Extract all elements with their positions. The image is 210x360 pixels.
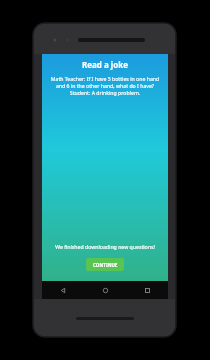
button[interactable]: CONTINUE bbox=[86, 258, 124, 271]
button[interactable]: Back bbox=[42, 281, 84, 299]
button[interactable]: Recent apps bbox=[126, 281, 168, 299]
staticText: We finished downloading new questions! bbox=[55, 243, 155, 250]
button[interactable]: Home bbox=[84, 281, 126, 299]
staticText: Math Teacher: If I have 5 bottles in one… bbox=[47, 75, 163, 96]
staticText: Read a joke bbox=[82, 59, 128, 70]
staticText: CONTINUE bbox=[93, 262, 118, 268]
